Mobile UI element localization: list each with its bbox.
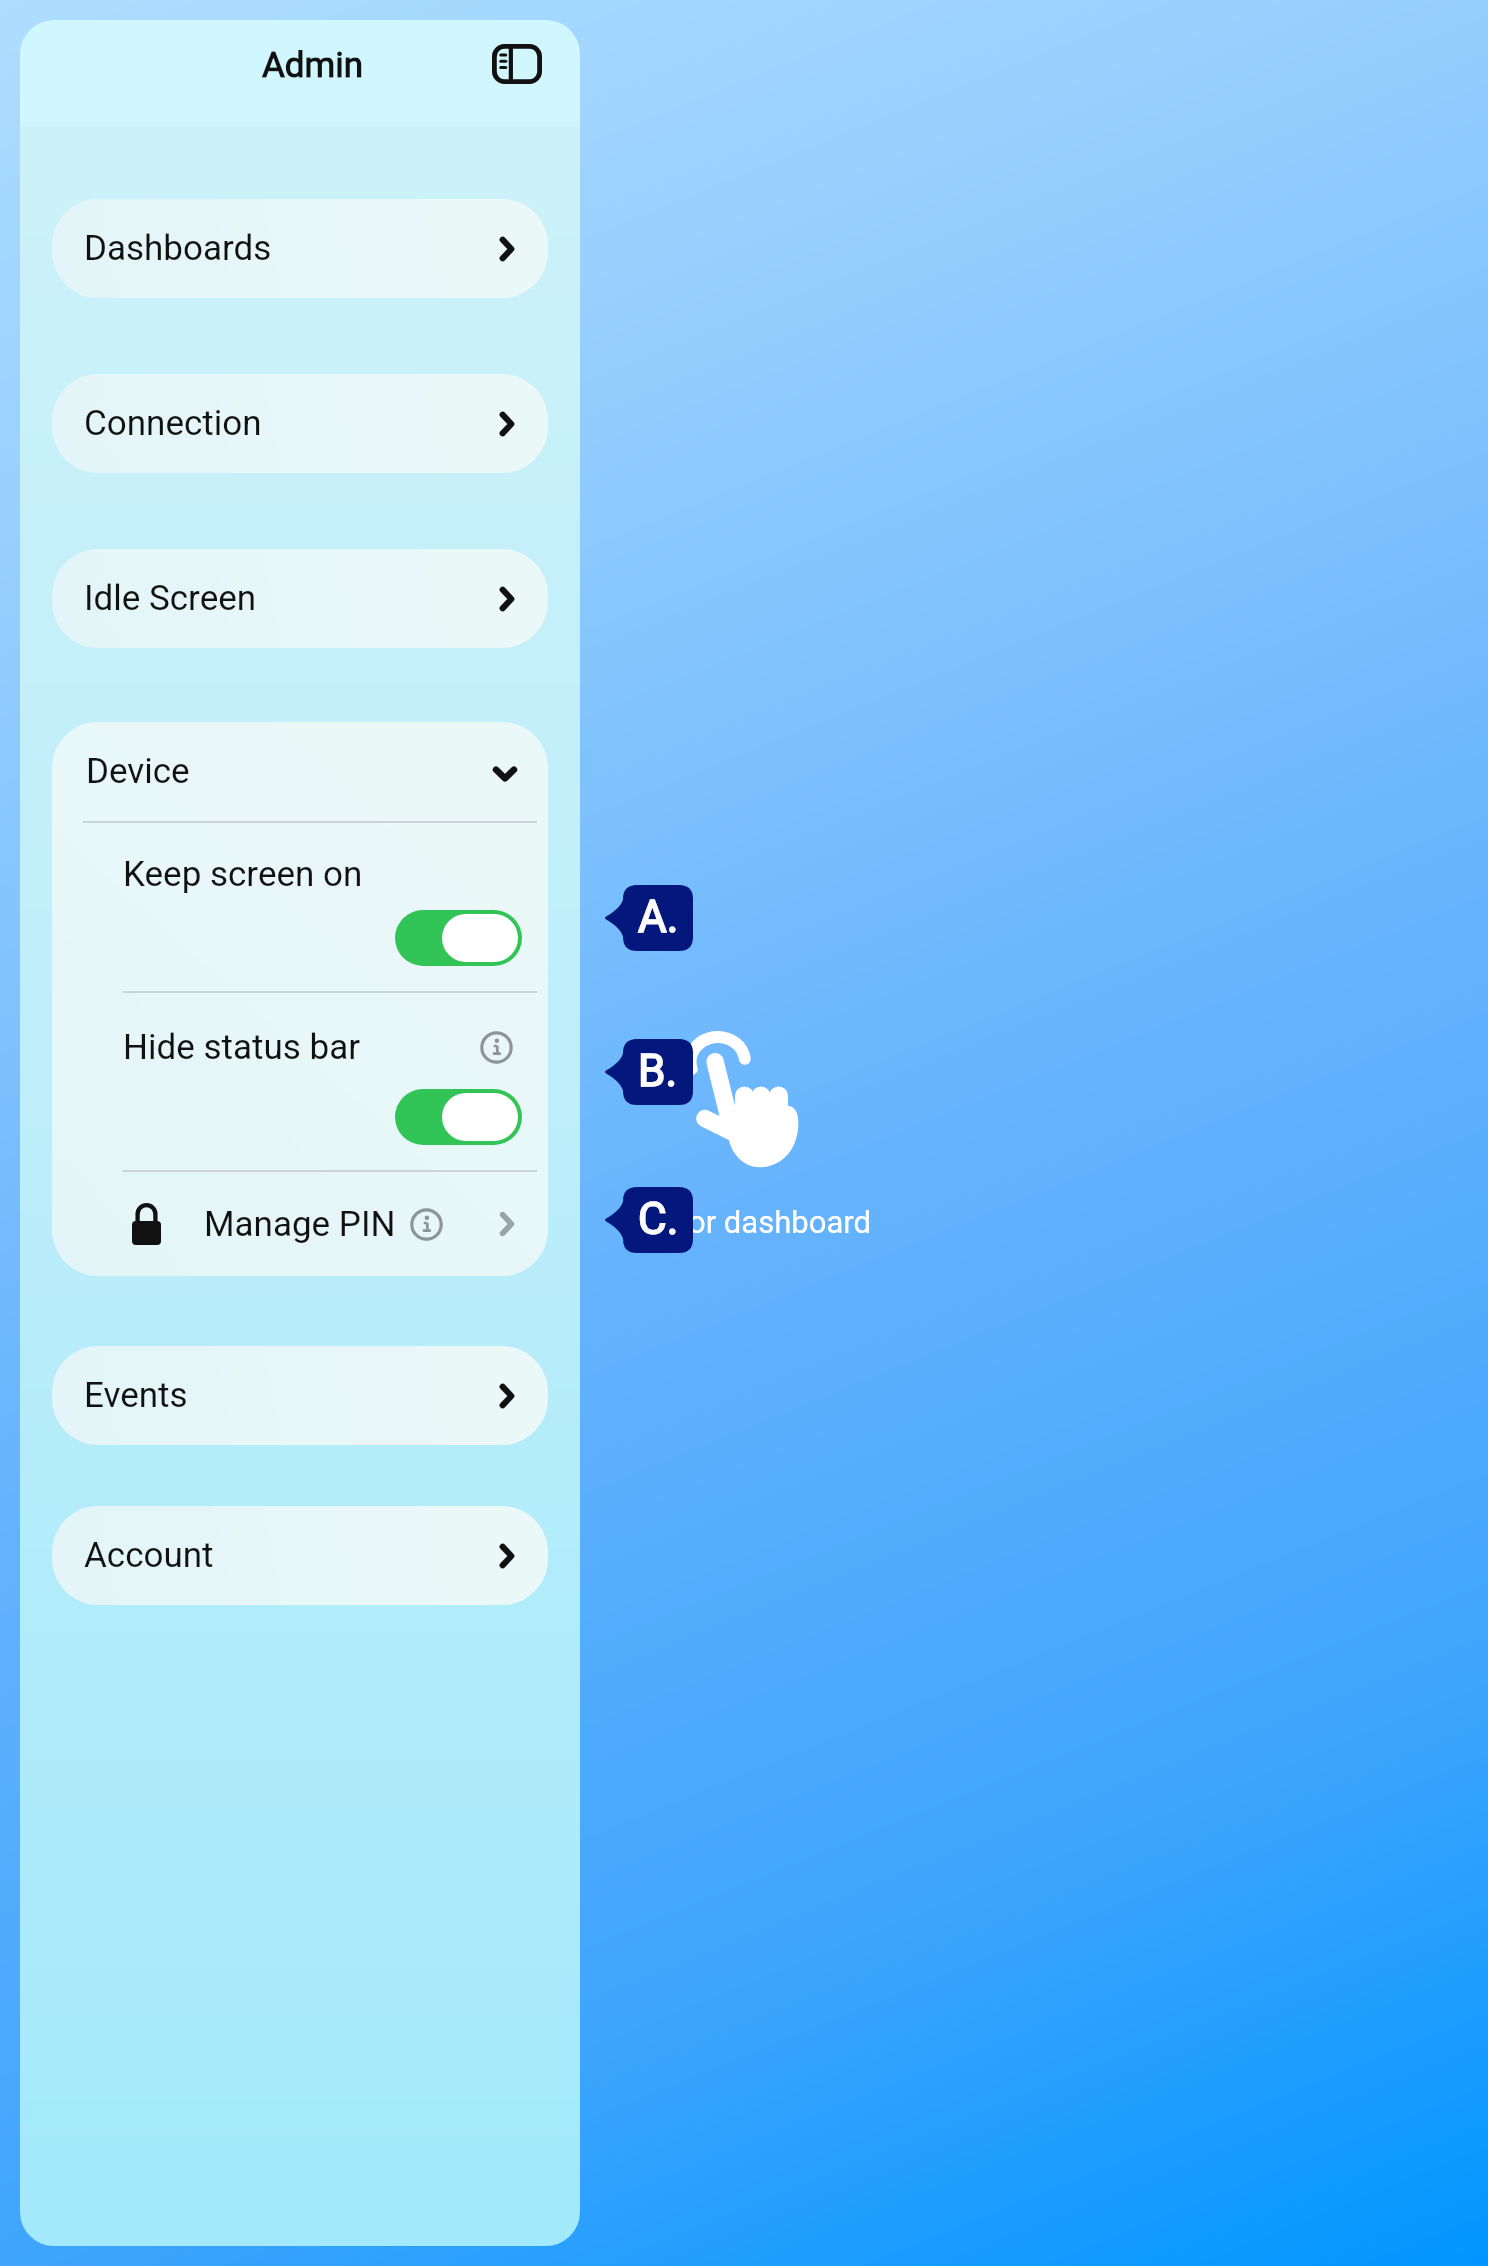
button[interactable]: Device (52, 722, 548, 821)
staticText: Idle Screen (84, 578, 257, 619)
button[interactable]: Connection (52, 374, 548, 473)
button[interactable]: Hide status bar (52, 993, 548, 1170)
button[interactable]: Account (52, 1506, 548, 1605)
staticText: or dashboard (688, 1204, 871, 1240)
staticText: Manage PIN (204, 1204, 396, 1245)
button[interactable]: More information (410, 1208, 443, 1241)
button[interactable]: Dashboards (52, 199, 548, 298)
button[interactable]: More information (480, 1031, 513, 1064)
staticText: C. (638, 1193, 679, 1245)
button[interactable]: Idle Screen (52, 549, 548, 648)
staticText: Connection (84, 403, 262, 444)
staticText: A. (638, 891, 679, 943)
button[interactable]: Keep screen on (52, 823, 548, 991)
staticText: Keep screen on (123, 854, 363, 895)
button[interactable]: Manage PIN (52, 1172, 548, 1276)
button[interactable]: Toggle navigation panel (482, 29, 552, 99)
staticText: Account (84, 1535, 214, 1576)
button[interactable] (395, 1089, 522, 1145)
staticText: Dashboards (84, 228, 272, 269)
staticText: Hide status bar (123, 1027, 361, 1068)
staticText: Events (84, 1375, 188, 1416)
staticText: Device (86, 751, 190, 792)
staticText: Admin (262, 45, 364, 86)
staticText: B. (638, 1045, 678, 1097)
button[interactable]: Events (52, 1346, 548, 1445)
button[interactable] (395, 910, 522, 966)
